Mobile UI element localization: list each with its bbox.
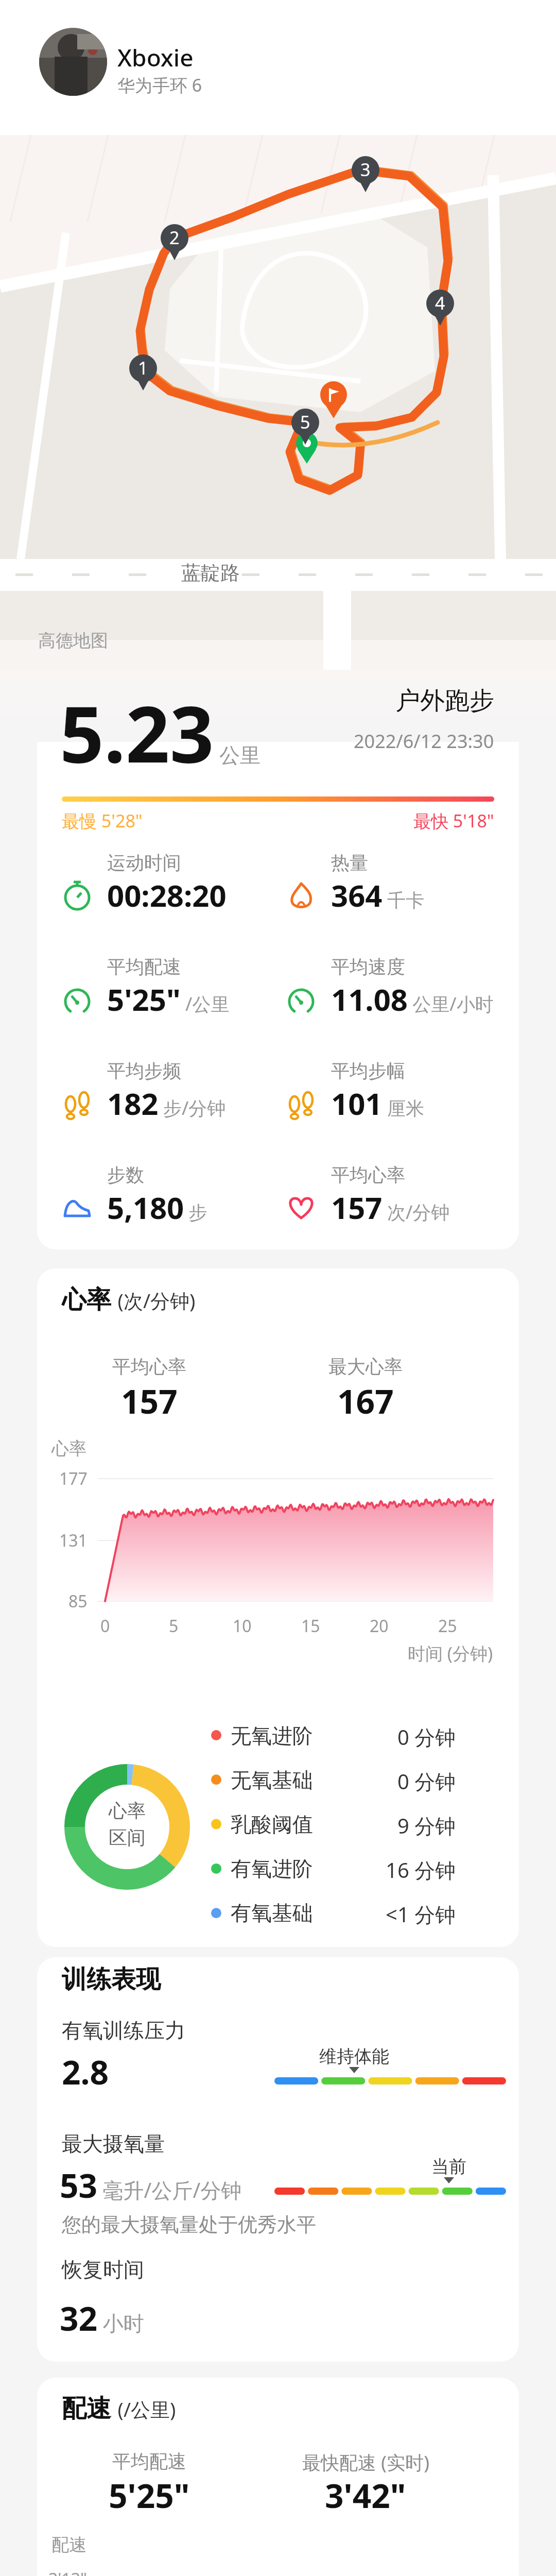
staticText: 运动时间 [107, 851, 181, 874]
staticText: 157 [121, 1379, 178, 1423]
staticText: 0 分钟 [397, 1723, 456, 1751]
staticText: 配速 (/公里) [62, 2391, 176, 2425]
button[interactable] [37, 1957, 519, 2362]
staticText: 时间 (分钟) [408, 1641, 493, 1665]
staticText: 25 [438, 1615, 457, 1637]
staticText: 32 小时 [60, 2296, 144, 2341]
staticText: 步数 [107, 1163, 144, 1187]
staticText: 101 厘米 [331, 1083, 424, 1124]
staticText: 平均步频 [107, 1059, 181, 1082]
staticText: 平均心率 [112, 1355, 186, 1378]
staticText: 最慢 5'28" [62, 809, 143, 833]
staticText: 最快 5'18" [413, 809, 494, 833]
staticText: 16 分钟 [386, 1856, 456, 1884]
staticText: 平均步幅 [331, 1059, 405, 1082]
staticText: 1 [138, 356, 148, 380]
staticText: 157 次/分钟 [331, 1187, 450, 1228]
staticText: 无氧进阶 [231, 1723, 313, 1749]
staticText: 有氧基础 [231, 1900, 313, 1926]
staticText: 蓝靛路 [181, 561, 240, 585]
staticText: 53 毫升/公斤/分钟 [60, 2163, 242, 2208]
staticText: 心率 区间 [109, 1799, 146, 1850]
staticText: 5 [169, 1615, 179, 1637]
staticText: 4 [435, 291, 445, 315]
staticText: 高德地图 [38, 630, 108, 652]
staticText: 最快配速 (实时) [302, 2450, 429, 2475]
staticText: 无氧基础 [231, 1767, 313, 1793]
staticText: 乳酸阈值 [231, 1811, 313, 1837]
staticText: 当前 [431, 2156, 466, 2178]
staticText: 5,180 步 [107, 1187, 207, 1228]
staticText: 20 [370, 1615, 389, 1637]
staticText: 恢复时间 [62, 2257, 144, 2282]
staticText: 训练表现 [62, 1964, 161, 1995]
staticText: 11.08 公里/小时 [331, 979, 494, 1020]
staticText: 3 [360, 158, 371, 181]
staticText: 心率 (次/分钟) [62, 1282, 196, 1316]
staticText: 配速 [51, 2534, 86, 2556]
staticText: 最大心率 [328, 1355, 403, 1378]
staticText: 户外跑步 [395, 685, 494, 716]
staticText: 364 千卡 [331, 875, 424, 916]
staticText: 167 [337, 1379, 394, 1423]
staticText: 平均配速 [112, 2450, 186, 2473]
staticText: 15 [301, 1615, 320, 1637]
staticText: 9 分钟 [397, 1811, 456, 1840]
staticText: 华为手环 6 [117, 73, 202, 97]
staticText: 131 [59, 1529, 88, 1552]
staticText: 平均配速 [107, 955, 181, 978]
staticText: <1 分钟 [386, 1900, 456, 1928]
staticText: 热量 [331, 851, 368, 874]
staticText: 3'42" [325, 2473, 406, 2518]
staticText: 有氧训练压力 [62, 2018, 185, 2043]
staticText: 0 [100, 1615, 110, 1637]
staticText: 5'25" [109, 2473, 190, 2518]
staticText: 心率 [51, 1437, 86, 1460]
staticText: 00:28:20 [107, 875, 227, 916]
staticText: 5'25" /公里 [107, 979, 230, 1020]
button[interactable] [37, 2378, 519, 2576]
staticText: 2.8 [62, 2049, 109, 2094]
staticText: 5.23 公里 [60, 680, 260, 785]
staticText: 10 [233, 1615, 252, 1637]
staticText: 2 [169, 226, 180, 249]
staticText: 有氧进阶 [231, 1856, 313, 1882]
staticText: 最大摄氧量 [62, 2131, 165, 2157]
staticText: 5 [300, 410, 310, 434]
button[interactable] [31, 21, 288, 108]
staticText: 182 步/分钟 [107, 1083, 226, 1124]
staticText: 平均心率 [331, 1163, 405, 1187]
button[interactable] [37, 1268, 519, 1947]
staticText: Xboxie [117, 41, 194, 74]
staticText: 2022/6/12 23:30 [354, 728, 494, 754]
staticText: 平均速度 [331, 955, 405, 978]
staticText: 177 [59, 1467, 88, 1490]
staticText: 85 [68, 1590, 88, 1613]
staticText: 维持体能 [319, 2045, 389, 2067]
staticText: 0 分钟 [397, 1767, 456, 1795]
staticText: 3'13" [48, 2568, 88, 2576]
button[interactable] [37, 668, 519, 1249]
staticText: 您的最大摄氧量处于优秀水平 [62, 2212, 316, 2237]
